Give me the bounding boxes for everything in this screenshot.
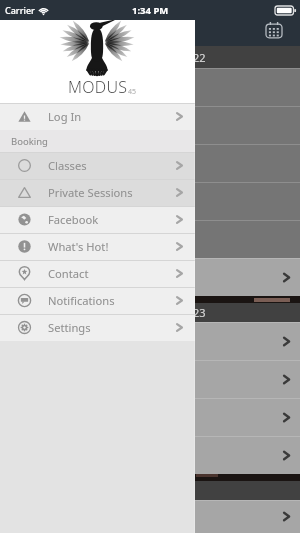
- staticText: Booking: [11, 135, 48, 148]
- button[interactable]: Private Sessions: [0, 179, 195, 206]
- staticText: Notifications: [48, 293, 115, 308]
- staticText: Contact: [48, 266, 89, 281]
- staticText: 45: [128, 87, 137, 97]
- staticText: Log In: [48, 109, 82, 124]
- button[interactable]: [0, 500, 300, 533]
- button[interactable]: [0, 398, 300, 436]
- button[interactable]: [0, 144, 300, 182]
- button[interactable]: Settings: [0, 314, 195, 341]
- button[interactable]: [0, 68, 300, 106]
- button[interactable]: Calendar: [264, 20, 284, 40]
- button[interactable]: [0, 258, 300, 296]
- button[interactable]: Log In: [0, 103, 195, 130]
- staticText: Classes: [48, 158, 87, 173]
- button[interactable]: [0, 360, 300, 398]
- staticText: 23: [193, 305, 206, 320]
- staticText: Private Sessions: [48, 185, 133, 200]
- button[interactable]: [0, 106, 300, 144]
- staticText: Facebook: [48, 212, 99, 227]
- button[interactable]: Contact: [0, 260, 195, 287]
- staticText: 22: [193, 50, 206, 65]
- button[interactable]: Notifications: [0, 287, 195, 314]
- button[interactable]: Facebook: [0, 206, 195, 233]
- button[interactable]: What's Hot!: [0, 233, 195, 260]
- staticText: Carrier: [5, 4, 35, 16]
- staticText: MODUS: [68, 76, 128, 98]
- button[interactable]: [0, 220, 300, 258]
- staticText: Settings: [48, 320, 91, 335]
- button[interactable]: [0, 436, 300, 474]
- staticText: What's Hot!: [48, 239, 109, 254]
- button[interactable]: [0, 182, 300, 220]
- button[interactable]: Classes: [0, 152, 195, 179]
- staticText: 1:34 PM: [132, 4, 169, 17]
- button[interactable]: [0, 322, 300, 360]
